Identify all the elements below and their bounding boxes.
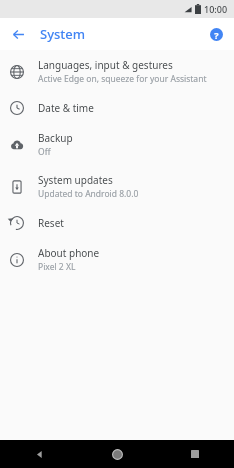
staticText: ? <box>214 29 219 41</box>
button[interactable]: Help <box>206 24 226 44</box>
button[interactable]: Back <box>0 440 78 468</box>
staticText: Date & time <box>38 101 94 115</box>
button[interactable]: Languages, input & gestures <box>0 50 234 92</box>
button[interactable]: Date & time <box>0 92 234 123</box>
staticText: Pixel 2 XL <box>38 261 76 273</box>
button[interactable]: Recent apps <box>156 440 234 468</box>
button[interactable]: Reset <box>0 207 234 238</box>
button[interactable]: Backup <box>0 123 234 165</box>
button[interactable]: About phone <box>0 238 234 280</box>
staticText: Off <box>38 146 51 158</box>
button[interactable]: Back <box>8 24 28 44</box>
staticText: Active Edge on, squeeze for your Assista… <box>38 73 207 85</box>
staticText: System <box>40 25 86 43</box>
staticText: About phone <box>38 246 100 260</box>
button[interactable]: System updates <box>0 165 234 207</box>
staticText: Languages, input & gestures <box>38 58 173 72</box>
staticText: Backup <box>38 131 73 145</box>
staticText: System updates <box>38 173 113 187</box>
staticText: Reset <box>38 216 64 230</box>
button[interactable]: Home <box>78 440 156 468</box>
staticText: Updated to Android 8.0.0 <box>38 188 139 200</box>
staticText: 10:00 <box>204 3 228 15</box>
